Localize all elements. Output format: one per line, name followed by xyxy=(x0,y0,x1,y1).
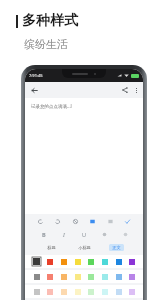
staticText: 缤纷生活 xyxy=(24,37,68,51)
button[interactable]: 标题 xyxy=(44,244,59,251)
button[interactable]: Color 4 xyxy=(72,256,83,267)
button[interactable]: Color 7 xyxy=(113,286,124,297)
staticText: I xyxy=(63,231,65,238)
staticText: 多种样式 xyxy=(22,12,78,30)
button[interactable]: Color 8 xyxy=(126,286,137,297)
staticText: 记录您的点点滴滴...l xyxy=(31,103,72,109)
staticText: U xyxy=(82,231,87,238)
button[interactable]: Redo xyxy=(52,216,63,227)
button[interactable]: Color 2 xyxy=(44,271,55,282)
button[interactable]: 小标题 xyxy=(75,244,94,251)
button[interactable]: Color 1 xyxy=(31,256,42,267)
button[interactable]: Color 8 xyxy=(126,256,137,267)
button[interactable]: Color 2 xyxy=(44,256,55,267)
button[interactable]: Color 4 xyxy=(72,286,83,297)
staticText: B xyxy=(42,231,46,238)
button[interactable]: Color 4 xyxy=(72,271,83,282)
button[interactable]: Color 3 xyxy=(58,286,69,297)
button[interactable]: Color 1 xyxy=(31,286,42,297)
staticText: 标题 xyxy=(47,245,56,250)
button[interactable]: Insert image xyxy=(87,216,98,227)
button[interactable]: Back xyxy=(28,84,40,96)
button[interactable]: Color 5 xyxy=(85,286,96,297)
button[interactable]: Color 8 xyxy=(126,271,137,282)
button[interactable]: U xyxy=(79,229,90,240)
button[interactable]: I xyxy=(58,229,69,240)
button[interactable]: Highlight xyxy=(120,229,131,240)
button[interactable]: Color 2 xyxy=(44,286,55,297)
button[interactable]: 正文 xyxy=(109,244,124,251)
button[interactable]: Color 3 xyxy=(58,256,69,267)
button[interactable]: Color 6 xyxy=(99,286,110,297)
button[interactable]: Clear format xyxy=(70,216,81,227)
button[interactable]: Color 5 xyxy=(85,271,96,282)
button[interactable]: More options xyxy=(131,85,141,95)
button[interactable]: B xyxy=(38,229,49,240)
button[interactable]: Color 7 xyxy=(113,256,124,267)
button[interactable]: Color 5 xyxy=(85,256,96,267)
button[interactable]: Strikethrough xyxy=(99,229,110,240)
button[interactable]: Done xyxy=(122,216,133,227)
button[interactable]: Align xyxy=(105,216,116,227)
button[interactable]: Color 7 xyxy=(113,271,124,282)
button[interactable]: Color 6 xyxy=(99,271,110,282)
staticText: 小标题 xyxy=(78,245,91,250)
staticText: 7:91:45 xyxy=(29,73,43,78)
button[interactable]: Color 3 xyxy=(58,271,69,282)
button[interactable]: Undo xyxy=(35,216,46,227)
button[interactable]: Color 1 xyxy=(31,271,42,282)
button[interactable]: Color 6 xyxy=(99,256,110,267)
staticText: 正文 xyxy=(112,245,121,250)
button[interactable]: Share xyxy=(119,84,131,96)
